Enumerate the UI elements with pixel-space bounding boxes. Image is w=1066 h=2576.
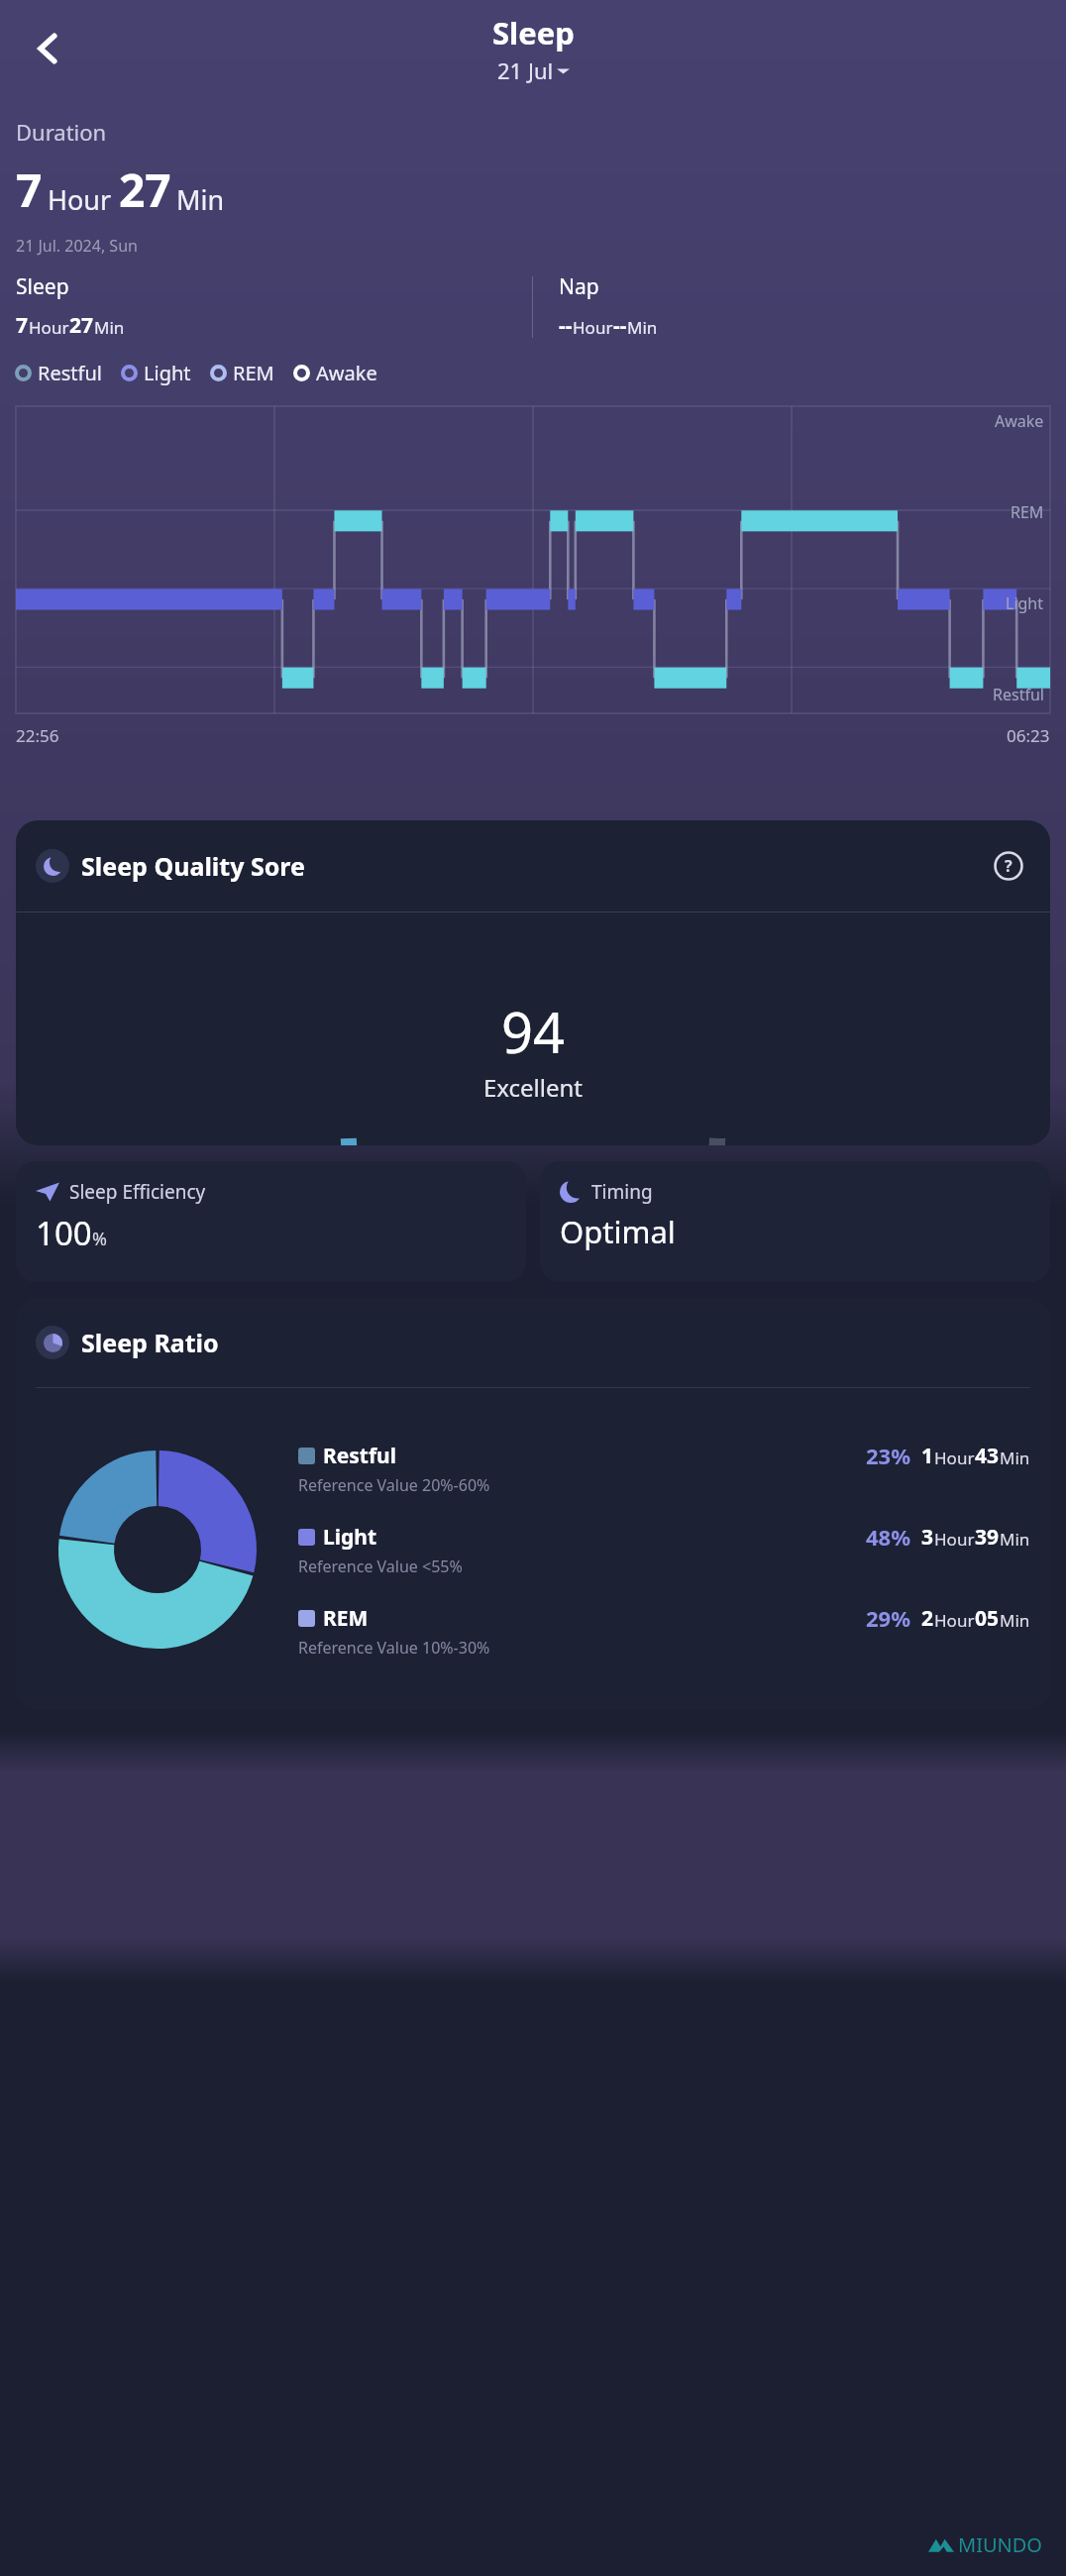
staticText: Awake [316,360,377,386]
button[interactable]: 21 Jul [497,55,570,85]
staticText: Min [627,316,658,339]
button[interactable]: Restful [16,360,122,386]
staticText: -- [559,311,573,340]
staticText: Light [323,1523,377,1552]
staticText: Hour [934,1609,975,1632]
staticText: 23% [866,1441,911,1470]
button[interactable]: Timing [540,1161,1050,1282]
staticText: Reference Value 20%-60% [298,1474,490,1496]
staticText: Light [144,360,191,386]
button[interactable]: Awake [294,360,397,386]
staticText: 05 [975,1604,1000,1633]
staticText: 27 [119,159,171,221]
staticText: Sleep [492,12,575,54]
staticText: 1 [921,1442,934,1470]
staticText: 7 [16,311,29,340]
staticText: Reference Value <55% [298,1556,463,1577]
staticText: Awake [995,410,1044,432]
staticText: Restful [323,1442,397,1470]
staticText: REM [323,1604,369,1633]
staticText: Hour [29,316,69,339]
staticText: -- [613,311,627,340]
staticText: Hour [573,316,613,339]
staticText: 94 [501,994,566,1069]
staticText: Duration [16,117,107,147]
staticText: 7 [16,159,43,221]
staticText: 22:56 [16,724,59,747]
staticText: Sleep Efficiency [69,1179,206,1205]
staticText: Restful [993,684,1044,705]
button[interactable]: Sleep Quality Sore [16,820,1050,1145]
staticText: Min [1000,1609,1030,1632]
staticText: 2 [921,1604,934,1633]
staticText: Min [94,316,125,339]
staticText: Min [1000,1528,1030,1551]
button[interactable]: Back [16,20,73,77]
staticText: Hour [934,1447,975,1469]
staticText: Light [1006,592,1044,614]
staticText: 06:23 [1007,724,1050,747]
staticText: Timing [591,1179,653,1205]
staticText: Min [1000,1447,1030,1469]
staticText: Sleep Quality Sore [81,849,305,883]
staticText: Hour [934,1528,975,1551]
staticText: Sleep Ratio [81,1326,219,1359]
staticText: 29% [866,1603,911,1633]
button[interactable]: Help [987,844,1030,888]
staticText: % [92,1227,107,1251]
button[interactable]: REM [211,360,294,386]
button[interactable]: Light [122,360,211,386]
staticText: REM [233,360,274,386]
staticText: Nap [559,272,599,301]
button[interactable]: Sleep Ratio [16,1298,1050,1710]
staticText: 21 Jul [497,55,554,85]
staticText: 27 [69,311,94,340]
staticText: 21 Jul. 2024, Sun [16,235,138,257]
staticText: Min [176,181,225,218]
staticText: Sleep [16,272,69,301]
staticText: 3 [921,1523,934,1552]
staticText: MIUNDO [958,2531,1042,2558]
staticText: Hour [48,181,112,218]
staticText: Optimal [560,1211,676,1252]
staticText: Restful [38,360,102,386]
staticText: 48% [866,1522,911,1552]
button[interactable]: Sleep Efficiency [16,1161,526,1282]
staticText: 100 [36,1211,92,1255]
staticText: 39 [975,1523,1000,1552]
staticText: Excellent [483,1071,584,1104]
staticText: Reference Value 10%-30% [298,1637,490,1659]
staticText: REM [1011,501,1044,523]
staticText: ? [1005,855,1013,877]
staticText: 43 [975,1442,1000,1470]
